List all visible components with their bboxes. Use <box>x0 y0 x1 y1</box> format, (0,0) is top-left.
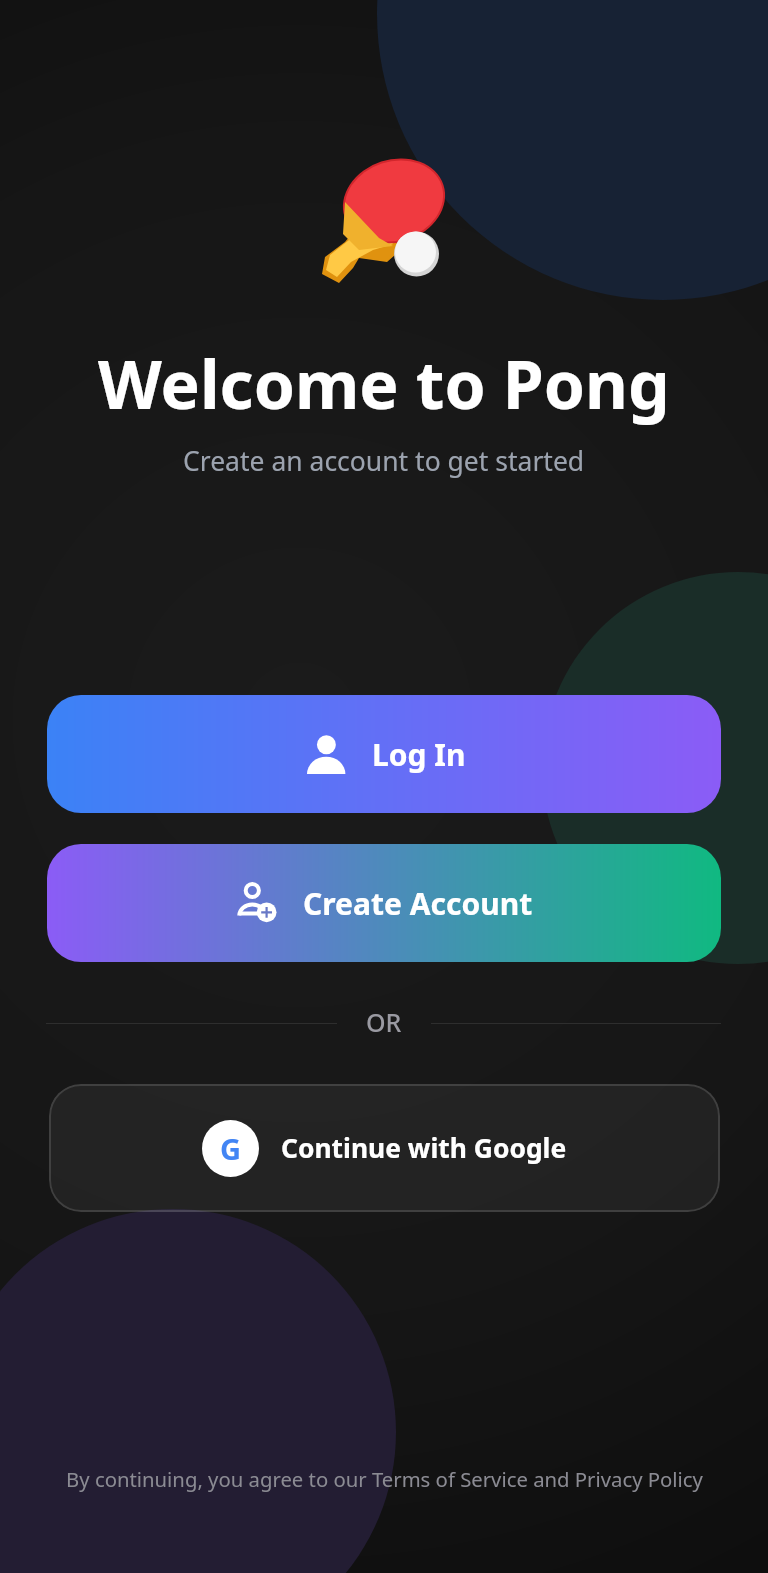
button[interactable]: By continuing, you agree to our Terms of… <box>42 1461 727 1497</box>
staticText: G <box>220 1129 241 1168</box>
staticText: Continue with Google <box>281 1130 567 1166</box>
button[interactable]: G <box>49 1084 720 1212</box>
staticText: Create an account to get started <box>183 443 585 479</box>
staticText: Create Account <box>303 883 533 924</box>
button[interactable]: Log In <box>47 695 721 813</box>
staticText: OR <box>366 1005 402 1039</box>
staticText: Welcome to Pong <box>98 338 670 428</box>
staticText: Log In <box>372 734 466 775</box>
button[interactable]: Create Account <box>47 844 721 962</box>
other: Ping pong paddle and ball <box>315 150 455 290</box>
